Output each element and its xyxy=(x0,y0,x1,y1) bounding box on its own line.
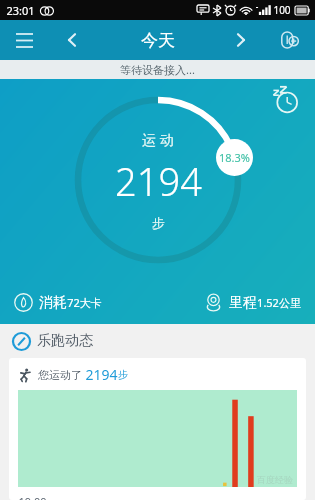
button[interactable]: 里程 xyxy=(204,293,301,312)
staticText: 消耗 xyxy=(39,294,67,312)
staticText: 2194 xyxy=(115,155,202,207)
staticText: 步 xyxy=(118,368,128,381)
staticText: 19:00 xyxy=(18,494,47,500)
button[interactable]: 等待设备接入... xyxy=(0,60,315,79)
staticText: 您运动了 xyxy=(38,368,82,382)
button[interactable]: Sleep xyxy=(269,83,303,117)
staticText: 23:01 xyxy=(6,3,35,18)
button[interactable]: 18.3% xyxy=(216,139,253,176)
button[interactable]: 您运动了 xyxy=(9,358,306,500)
button[interactable]: Menu xyxy=(8,24,40,56)
staticText: 等待设备接入... xyxy=(120,62,195,77)
button[interactable]: 今天 xyxy=(141,30,175,51)
staticText: 今天 xyxy=(141,30,175,51)
staticText: 百度经验 xyxy=(257,474,293,485)
staticText: 乐跑动态 xyxy=(37,332,93,350)
staticText: 18.3% xyxy=(219,150,250,165)
button[interactable]: 消耗 xyxy=(14,293,102,312)
staticText: 步 xyxy=(152,215,165,231)
staticText: 里程 xyxy=(229,294,257,312)
staticText: 72大卡 xyxy=(67,295,102,310)
staticText: 2194 xyxy=(85,365,118,384)
button[interactable]: 乐跑动态 xyxy=(0,324,315,358)
button[interactable]: Previous day xyxy=(56,24,88,56)
button[interactable]: Add device xyxy=(273,24,305,56)
staticText: 100 xyxy=(273,3,291,17)
staticText: 运 动 xyxy=(142,130,174,149)
button[interactable]: Next day xyxy=(225,24,257,56)
staticText: 1.52公里 xyxy=(257,295,301,310)
